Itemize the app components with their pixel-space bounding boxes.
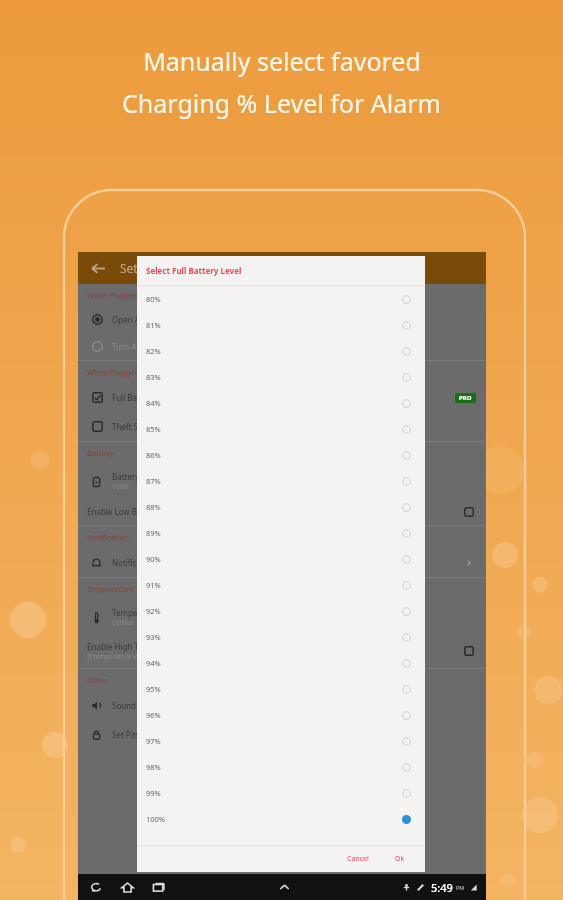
staticText: 5:49 (431, 880, 453, 895)
button[interactable]: Set Password (78, 720, 486, 749)
button[interactable]: 82% (137, 338, 425, 364)
staticText: 98% (146, 762, 161, 772)
staticText: Select Full Battery Level (146, 265, 242, 276)
staticText: Charging % Level for Alarm (122, 86, 441, 120)
button[interactable]: Enable High Temperature Alarm (78, 634, 486, 668)
button[interactable]: Temperature Unit (78, 600, 486, 634)
button[interactable]: 97% (137, 728, 425, 754)
staticText: 91% (146, 580, 161, 590)
staticText: Theft Security Alarm (112, 421, 189, 432)
staticText: Battery (87, 448, 114, 458)
staticText: 85% (146, 424, 161, 434)
button[interactable]: Turn Alarm Off (78, 333, 486, 360)
button[interactable]: Notification Settings (78, 548, 486, 577)
button[interactable]: Back (88, 258, 108, 278)
staticText: 83% (146, 372, 161, 382)
staticText: Full Battery Alarm (112, 392, 180, 403)
button[interactable]: 92% (137, 598, 425, 624)
staticText: Temperature Unit (112, 607, 179, 618)
staticText: 87% (146, 476, 161, 486)
button[interactable]: 96% (137, 702, 425, 728)
staticText: 99% (146, 788, 161, 798)
staticText: Enable High Temperature Alarm (87, 641, 208, 652)
staticText: If temperature exceeds limit (87, 652, 173, 661)
staticText: 95% (146, 684, 161, 694)
staticText: 92% (146, 606, 161, 616)
staticText: Turn Alarm Off (112, 341, 168, 352)
staticText: PRO (459, 394, 472, 402)
staticText: 82% (146, 346, 161, 356)
staticText: 94% (146, 658, 161, 668)
button[interactable]: Cancel (341, 851, 375, 867)
staticText: 93% (146, 632, 161, 642)
button[interactable]: Battery Level (78, 464, 486, 498)
button[interactable]: Back (88, 879, 105, 896)
staticText: 96% (146, 710, 161, 720)
staticText: PM (456, 884, 465, 891)
staticText: 80% (146, 294, 161, 304)
button[interactable]: 86% (137, 442, 425, 468)
button[interactable]: Sound (78, 691, 486, 720)
button[interactable]: Open App (78, 306, 486, 333)
staticText: Cancel (347, 854, 369, 864)
staticText: Sound (112, 700, 137, 711)
button[interactable]: 83% (137, 364, 425, 390)
staticText: When Plugged Out (87, 367, 155, 377)
button[interactable]: Recents (150, 879, 167, 896)
button[interactable]: 91% (137, 572, 425, 598)
staticText: Open App (112, 314, 150, 325)
button[interactable]: Ok (389, 851, 411, 867)
staticText: Temperature (87, 584, 134, 594)
staticText: Ok (395, 854, 405, 864)
staticText: Celsius (112, 618, 134, 627)
staticText: 89% (146, 528, 161, 538)
button[interactable]: 90% (137, 546, 425, 572)
staticText: 90% (146, 554, 161, 564)
button[interactable]: 87% (137, 468, 425, 494)
button[interactable]: 98% (137, 754, 425, 780)
staticText: Set Password (112, 729, 163, 740)
staticText: 100% (112, 482, 129, 491)
button[interactable]: 81% (137, 312, 425, 338)
button[interactable]: 99% (137, 780, 425, 806)
button[interactable]: Full Battery Alarm (78, 383, 486, 412)
staticText: Other (87, 675, 108, 685)
button[interactable]: Expand (276, 879, 293, 896)
staticText: When Plugged In (87, 290, 149, 300)
staticText: 81% (146, 320, 161, 330)
staticText: Manually select favored (143, 44, 421, 78)
staticText: Enable Low Battery Alarm (87, 506, 184, 517)
button[interactable]: 85% (137, 416, 425, 442)
button[interactable]: 88% (137, 494, 425, 520)
button[interactable]: 95% (137, 676, 425, 702)
staticText: 97% (146, 736, 161, 746)
staticText: Battery Level (112, 471, 161, 482)
button[interactable]: 89% (137, 520, 425, 546)
staticText: 84% (146, 398, 161, 408)
button[interactable]: 84% (137, 390, 425, 416)
button[interactable]: 100% (137, 806, 425, 832)
staticText: 100% (146, 814, 166, 824)
staticText: Notification (87, 532, 130, 542)
button[interactable]: 80% (137, 286, 425, 312)
staticText: Settings (120, 260, 166, 276)
button[interactable]: Enable Low Battery Alarm (78, 498, 486, 525)
staticText: 86% (146, 450, 161, 460)
button[interactable]: 94% (137, 650, 425, 676)
staticText: Notification Settings (112, 557, 189, 568)
button[interactable]: Theft Security Alarm (78, 412, 486, 441)
staticText: 88% (146, 502, 161, 512)
button[interactable]: Home (119, 879, 136, 896)
button[interactable]: 93% (137, 624, 425, 650)
